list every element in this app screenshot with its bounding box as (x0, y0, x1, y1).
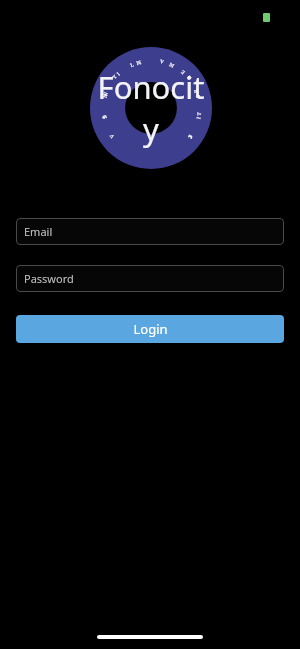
staticText: Password (24, 271, 74, 286)
staticText: I (101, 115, 108, 119)
staticText: C (186, 133, 194, 141)
staticText: Y (111, 73, 119, 81)
staticText: M (135, 58, 142, 67)
staticText: E (179, 68, 187, 76)
other: Recording indicator (263, 13, 270, 22)
staticText: Email (24, 224, 53, 239)
staticText: T (196, 112, 203, 116)
staticText: S (194, 94, 201, 99)
staticText: M (168, 61, 175, 70)
button[interactable]: Password (16, 265, 284, 292)
staticText: S (187, 133, 194, 140)
button[interactable]: Email (16, 218, 284, 245)
staticText: R (192, 88, 200, 94)
staticText: I (195, 116, 202, 120)
button[interactable]: Login (16, 315, 284, 343)
staticText: Fonocity (90, 66, 212, 150)
staticText: I (115, 71, 121, 77)
staticText: G (101, 114, 108, 120)
staticText: V (108, 132, 116, 140)
staticText: A (159, 57, 165, 65)
staticText: N (102, 93, 109, 99)
staticText: U (185, 74, 193, 82)
staticText: L (129, 61, 135, 69)
staticText: N (101, 91, 109, 97)
staticText: Login (133, 320, 168, 338)
